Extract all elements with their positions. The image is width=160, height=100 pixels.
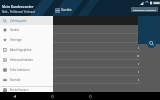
staticText: Einstellungen (10, 88, 29, 92)
button[interactable]: Geräte (0, 25, 53, 35)
button[interactable]: Kontakt (0, 75, 53, 85)
button[interactable]: Recent apps (86, 92, 94, 100)
button[interactable]: Verträge (0, 35, 53, 45)
button[interactable] (53, 76, 140, 84)
button[interactable]: Einstellungen (0, 88, 53, 92)
staticText: Zahlstquelle (10, 19, 27, 23)
button[interactable] (53, 43, 140, 52)
button[interactable] (53, 52, 140, 60)
button[interactable]: Zahlstquelle (0, 16, 53, 25)
button[interactable] (53, 60, 140, 68)
staticText: Abschlagspläne (10, 48, 32, 52)
button[interactable]: Search (147, 39, 156, 48)
button[interactable]: Verbrauch erfassen (131, 7, 158, 12)
button[interactable]: Verbrauchsdaten (0, 55, 53, 65)
staticText: Geräte (10, 28, 20, 32)
staticText: Mein Kundencenter (2, 5, 34, 9)
button[interactable] (53, 16, 140, 25)
staticText: Verbrauch erfassen (133, 8, 156, 11)
button[interactable]: Informationen (0, 65, 53, 75)
staticText: Geräte (61, 7, 72, 12)
staticText: Verbrauchsdaten (10, 58, 34, 62)
button[interactable] (53, 68, 140, 76)
button[interactable]: Home (48, 92, 56, 100)
button[interactable]: Back (10, 92, 18, 100)
staticText: Kontakt (10, 78, 21, 82)
staticText: Nett - Prüfwesen Verbund (2, 10, 35, 14)
button[interactable] (53, 25, 140, 34)
staticText: Informationen (10, 68, 30, 72)
button[interactable] (53, 34, 140, 43)
staticText: Verträge (10, 38, 22, 42)
button[interactable]: Open navigation drawer (53, 6, 61, 14)
button[interactable]: Abschlagspläne (0, 45, 53, 55)
